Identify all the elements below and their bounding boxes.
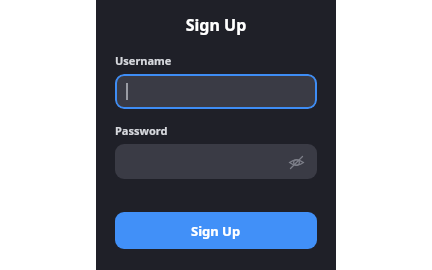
staticText: Sign Up: [191, 222, 241, 240]
button[interactable]: Sign Up: [115, 212, 317, 249]
button[interactable]: [115, 74, 317, 109]
staticText: Username: [115, 53, 172, 68]
staticText: Sign Up: [115, 14, 317, 36]
staticText: Password: [115, 123, 168, 138]
button[interactable]: Show password: [286, 152, 306, 172]
button[interactable]: Show password: [115, 144, 317, 179]
